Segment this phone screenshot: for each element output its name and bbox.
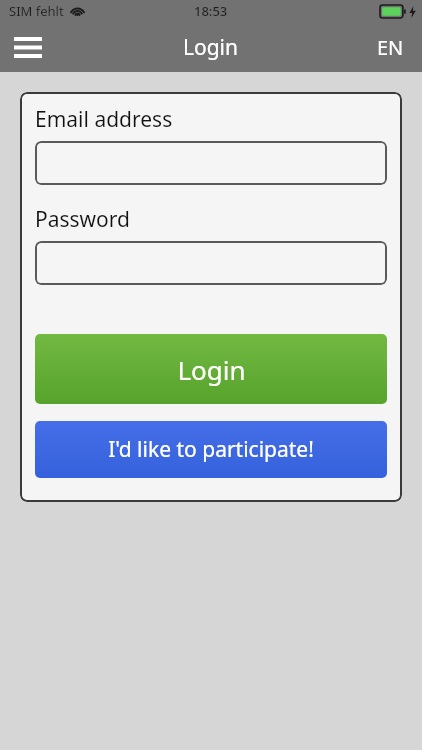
- staticText: Email address: [35, 105, 173, 134]
- staticText: Password: [35, 205, 130, 234]
- staticText: Login: [177, 352, 246, 387]
- staticText: Login: [183, 33, 239, 62]
- staticText: 18:53: [194, 2, 228, 20]
- button[interactable]: I'd like to participate!: [35, 421, 387, 478]
- staticText: I'd like to participate!: [108, 435, 314, 464]
- staticText: EN: [377, 34, 404, 61]
- button[interactable]: Text input: [35, 141, 387, 185]
- button[interactable]: Login: [35, 334, 387, 404]
- button[interactable]: Text input: [35, 241, 387, 285]
- staticText: SIM fehlt: [9, 2, 64, 20]
- button[interactable]: Open navigation menu: [6, 25, 50, 69]
- button[interactable]: EN: [362, 23, 418, 71]
